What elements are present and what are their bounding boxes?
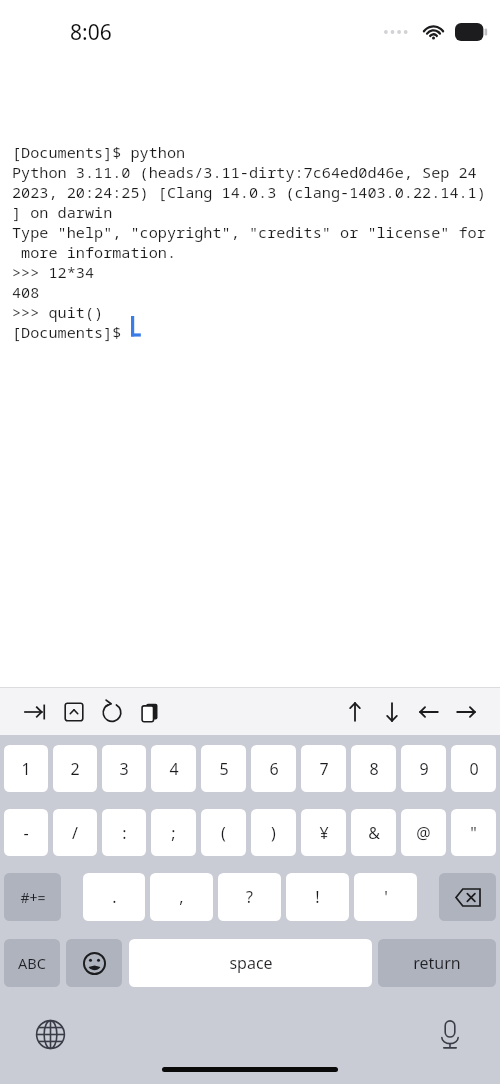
button[interactable]: Arrow up	[342, 699, 367, 724]
staticText: /	[72, 822, 78, 844]
button[interactable]: Undo	[99, 699, 124, 724]
button[interactable]: @	[401, 809, 446, 856]
staticText: 6	[269, 758, 279, 780]
button[interactable]: ?	[218, 873, 281, 921]
button[interactable]: space	[129, 939, 372, 987]
staticText: 2	[70, 758, 80, 780]
button[interactable]: .	[83, 873, 145, 921]
staticText: -	[23, 822, 29, 844]
staticText: >>> quit()	[12, 302, 104, 322]
button[interactable]: /	[53, 809, 97, 856]
staticText: ] on darwin	[12, 202, 113, 222]
button[interactable]: -	[4, 809, 48, 856]
staticText: ¥	[319, 822, 329, 844]
staticText: 4	[169, 758, 179, 780]
button[interactable]: 6	[251, 745, 296, 792]
button[interactable]: Tab	[22, 699, 47, 724]
button[interactable]: return	[378, 939, 496, 987]
staticText: 2023, 20:24:25) [Clang 14.0.3 (clang-140…	[12, 182, 486, 202]
staticText: 7	[319, 758, 329, 780]
staticText: 3	[119, 758, 129, 780]
button[interactable]: :	[102, 809, 146, 856]
button[interactable]: ;	[151, 809, 196, 856]
staticText: "	[470, 822, 477, 844]
button[interactable]: Arrow left	[416, 699, 441, 724]
button[interactable]: 9	[401, 745, 446, 792]
button[interactable]: Arrow down	[379, 699, 404, 724]
staticText: ,	[179, 886, 184, 908]
button[interactable]: Control	[61, 699, 86, 724]
staticText: 8	[369, 758, 379, 780]
button[interactable]: Arrow right	[453, 699, 478, 724]
button[interactable]: 7	[301, 745, 346, 792]
button[interactable]: !	[286, 873, 349, 921]
button[interactable]: Emoji	[66, 939, 122, 987]
staticText: .	[112, 886, 117, 908]
staticText: 8:06	[70, 18, 112, 47]
button[interactable]: #+=	[4, 873, 61, 921]
staticText: [Documents]$	[12, 322, 131, 342]
button[interactable]: 1	[4, 745, 48, 792]
button[interactable]: )	[251, 809, 296, 856]
staticText: 1	[21, 758, 31, 780]
button[interactable]: '	[354, 873, 417, 921]
button[interactable]: 0	[451, 745, 496, 792]
staticText: >>> 12*34	[12, 262, 95, 282]
staticText: 408	[12, 282, 40, 302]
button[interactable]: "	[451, 809, 496, 856]
staticText: '	[384, 886, 388, 908]
staticText: #+=	[20, 888, 46, 907]
staticText: ?	[246, 886, 253, 908]
button[interactable]: &	[351, 809, 396, 856]
staticText: (	[221, 822, 226, 844]
button[interactable]: (	[201, 809, 246, 856]
staticText: )	[271, 822, 276, 844]
staticText: 5	[219, 758, 229, 780]
staticText: !	[315, 886, 320, 908]
button[interactable]: 3	[102, 745, 146, 792]
button[interactable]: Dictate	[430, 1014, 470, 1054]
staticText: 9	[419, 758, 429, 780]
staticText: [Documents]$ python	[12, 142, 186, 162]
staticText: 0	[469, 758, 479, 780]
button[interactable]: Paste	[137, 699, 162, 724]
staticText: ;	[171, 822, 176, 844]
button[interactable]: ¥	[301, 809, 346, 856]
staticText: :	[122, 822, 127, 844]
staticText: &	[368, 822, 380, 844]
button[interactable]: Backspace	[439, 873, 496, 921]
button[interactable]: 2	[53, 745, 97, 792]
staticText: more information.	[12, 242, 177, 262]
staticText: return	[413, 952, 461, 974]
button[interactable]: 5	[201, 745, 246, 792]
button[interactable]: ,	[150, 873, 213, 921]
staticText: space	[229, 952, 273, 974]
button[interactable]: 8	[351, 745, 396, 792]
button[interactable]: ABC	[4, 939, 60, 987]
button[interactable]: Change keyboard language	[30, 1014, 70, 1054]
staticText: Python 3.11.0 (heads/3.11-dirty:7c64ed0d…	[12, 162, 477, 182]
staticText: @	[416, 822, 431, 844]
staticText: ABC	[18, 953, 46, 973]
staticText: Type "help", "copyright", "credits" or "…	[12, 222, 486, 242]
button[interactable]: 4	[151, 745, 196, 792]
